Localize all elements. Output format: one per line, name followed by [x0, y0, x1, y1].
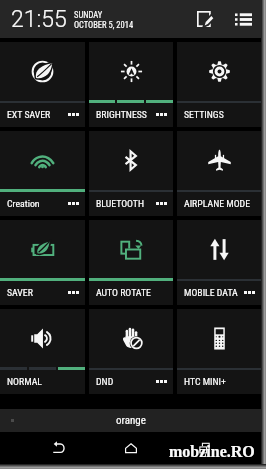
- button[interactable]: BLUETOOTH: [89, 131, 173, 216]
- button[interactable]: Recent apps: [189, 433, 219, 463]
- staticText: MOBILE DATA: [184, 287, 238, 298]
- staticText: SETTINGS: [184, 109, 224, 120]
- button[interactable]: Creation: [0, 131, 85, 216]
- staticText: Creation: [7, 198, 40, 209]
- button[interactable]: AIRPLANE MODE: [177, 131, 261, 216]
- button[interactable]: Back: [44, 432, 74, 462]
- staticText: AIRPLANE MODE: [184, 198, 251, 209]
- staticText: SUNDAY: [74, 10, 103, 20]
- staticText: OCTOBER 5, 2014: [74, 20, 134, 30]
- button[interactable]: Home: [116, 433, 146, 463]
- staticText: BLUETOOTH: [96, 198, 145, 209]
- staticText: AUTO ROTATE: [96, 287, 151, 298]
- button[interactable]: Edit quick settings: [197, 11, 213, 27]
- staticText: DND: [96, 376, 114, 387]
- button[interactable]: NORMAL: [0, 309, 85, 394]
- staticText: BRIGHTNESS: [96, 109, 147, 120]
- button[interactable]: BRIGHTNESS: [89, 42, 173, 127]
- button[interactable]: AUTO ROTATE: [89, 220, 173, 305]
- button[interactable]: DND: [89, 309, 173, 394]
- staticText: mobzine.RO: [169, 443, 255, 461]
- staticText: HTC MINI+: [184, 376, 226, 387]
- button[interactable]: EXT SAVER: [0, 42, 85, 127]
- staticText: 21:55: [11, 6, 67, 33]
- button[interactable]: SAVER: [0, 220, 85, 305]
- staticText: NORMAL: [7, 376, 42, 387]
- button[interactable]: HTC MINI+: [177, 309, 261, 394]
- button[interactable]: Notifications: [235, 11, 252, 28]
- staticText: EXT SAVER: [7, 109, 51, 120]
- staticText: SAVER: [7, 287, 33, 298]
- staticText: orange: [116, 414, 146, 427]
- button[interactable]: MOBILE DATA: [177, 220, 261, 305]
- button[interactable]: SETTINGS: [177, 42, 261, 127]
